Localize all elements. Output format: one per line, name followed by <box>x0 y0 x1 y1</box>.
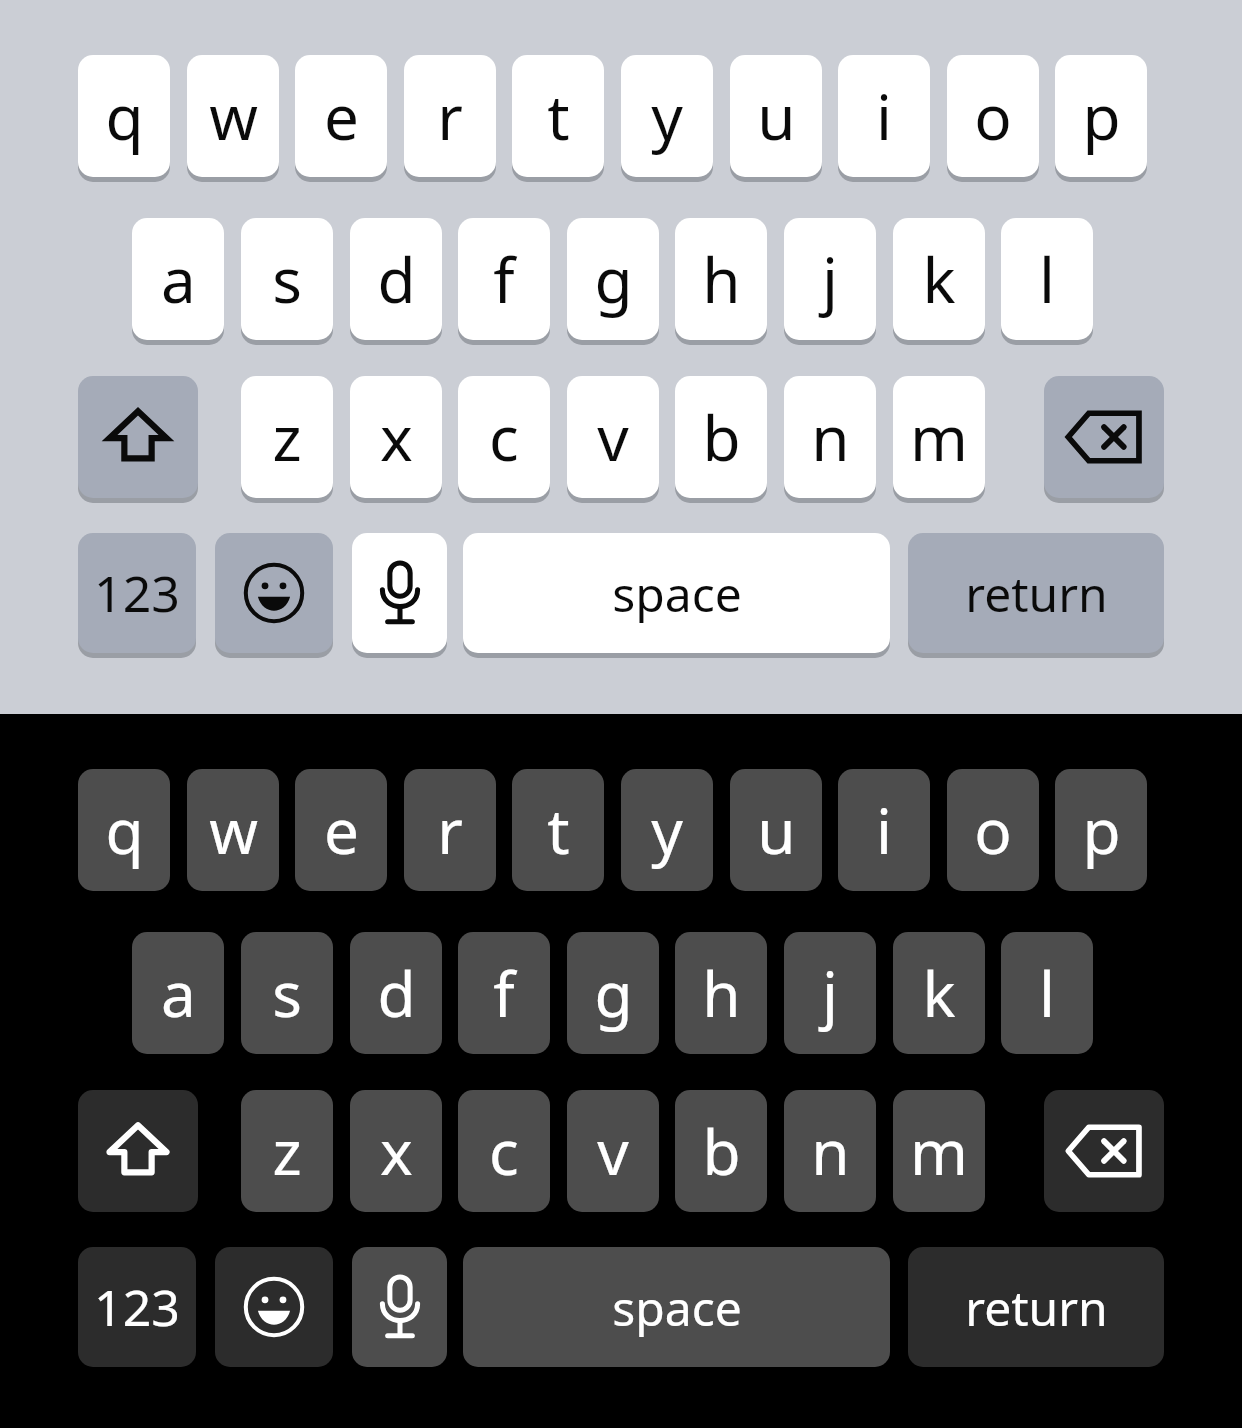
button[interactable]: t <box>512 55 604 177</box>
button[interactable]: c <box>458 1090 550 1212</box>
staticText: w <box>209 788 258 872</box>
button[interactable]: Dictate <box>352 533 447 653</box>
button[interactable]: s <box>241 932 333 1054</box>
button[interactable]: k <box>893 218 985 340</box>
button[interactable]: Backspace <box>1044 1090 1164 1212</box>
staticText: l <box>1039 951 1055 1035</box>
staticText: c <box>489 395 519 479</box>
staticText: m <box>910 1109 968 1193</box>
button[interactable]: f <box>458 932 550 1054</box>
staticText: d <box>377 951 416 1035</box>
button[interactable]: b <box>675 1090 767 1212</box>
button[interactable]: p <box>1055 769 1147 891</box>
staticText: b <box>702 1109 741 1193</box>
staticText: e <box>324 74 359 158</box>
staticText: p <box>1082 788 1121 872</box>
staticText: z <box>272 395 302 479</box>
button[interactable]: n <box>784 1090 876 1212</box>
button[interactable]: h <box>675 218 767 340</box>
staticText: b <box>702 395 741 479</box>
button[interactable]: u <box>730 769 822 891</box>
button[interactable]: l <box>1001 932 1093 1054</box>
button[interactable]: u <box>730 55 822 177</box>
button[interactable]: x <box>350 1090 442 1212</box>
staticText: r <box>437 788 463 872</box>
staticText: p <box>1082 74 1121 158</box>
button[interactable]: w <box>187 55 279 177</box>
button[interactable]: d <box>350 218 442 340</box>
button[interactable]: j <box>784 218 876 340</box>
button[interactable]: s <box>241 218 333 340</box>
button[interactable]: z <box>241 1090 333 1212</box>
button[interactable]: o <box>947 55 1039 177</box>
button[interactable]: Backspace <box>1044 376 1164 498</box>
staticText: n <box>811 1109 850 1193</box>
button[interactable]: Dictate <box>352 1247 447 1367</box>
staticText: 123 <box>94 559 180 627</box>
button[interactable]: g <box>567 218 659 340</box>
staticText: u <box>757 74 796 158</box>
staticText: u <box>757 788 796 872</box>
button[interactable]: c <box>458 376 550 498</box>
button[interactable]: return <box>908 1247 1164 1367</box>
staticText: l <box>1039 237 1055 321</box>
button[interactable]: y <box>621 769 713 891</box>
button[interactable]: 123 <box>78 533 196 653</box>
staticText: h <box>702 237 741 321</box>
button[interactable]: n <box>784 376 876 498</box>
button[interactable]: g <box>567 932 659 1054</box>
button[interactable]: f <box>458 218 550 340</box>
button[interactable]: m <box>893 1090 985 1212</box>
button[interactable]: d <box>350 932 442 1054</box>
staticText: a <box>161 951 196 1035</box>
button[interactable]: o <box>947 769 1039 891</box>
button[interactable]: q <box>78 55 170 177</box>
button[interactable]: space <box>463 533 890 653</box>
staticText: m <box>910 395 968 479</box>
button[interactable]: Shift <box>78 376 198 498</box>
button[interactable]: l <box>1001 218 1093 340</box>
button[interactable]: r <box>404 55 496 177</box>
button[interactable]: h <box>675 932 767 1054</box>
staticText: r <box>437 74 463 158</box>
button[interactable]: x <box>350 376 442 498</box>
staticText: t <box>547 788 570 872</box>
button[interactable]: t <box>512 769 604 891</box>
button[interactable]: p <box>1055 55 1147 177</box>
button[interactable]: r <box>404 769 496 891</box>
staticText: a <box>161 237 196 321</box>
staticText: t <box>547 74 570 158</box>
staticText: space <box>612 1275 742 1340</box>
button[interactable]: Emoji <box>215 1247 333 1367</box>
button[interactable]: v <box>567 1090 659 1212</box>
button[interactable]: j <box>784 932 876 1054</box>
staticText: v <box>597 395 629 479</box>
button[interactable]: e <box>295 55 387 177</box>
button[interactable]: b <box>675 376 767 498</box>
staticText: o <box>974 788 1012 872</box>
staticText: y <box>651 74 683 158</box>
staticText: i <box>876 74 892 158</box>
button[interactable]: a <box>132 932 224 1054</box>
button[interactable]: q <box>78 769 170 891</box>
staticText: space <box>612 561 742 626</box>
button[interactable]: z <box>241 376 333 498</box>
button[interactable]: v <box>567 376 659 498</box>
button[interactable]: i <box>838 55 930 177</box>
button[interactable]: return <box>908 533 1164 653</box>
button[interactable]: i <box>838 769 930 891</box>
button[interactable]: y <box>621 55 713 177</box>
staticText: g <box>594 237 633 321</box>
button[interactable]: space <box>463 1247 890 1367</box>
button[interactable]: Emoji <box>215 533 333 653</box>
button[interactable]: Shift <box>78 1090 198 1212</box>
button[interactable]: 123 <box>78 1247 196 1367</box>
button[interactable]: e <box>295 769 387 891</box>
button[interactable]: a <box>132 218 224 340</box>
staticText: z <box>272 1109 302 1193</box>
button[interactable]: m <box>893 376 985 498</box>
staticText: s <box>272 951 302 1035</box>
button[interactable]: w <box>187 769 279 891</box>
staticText: v <box>597 1109 629 1193</box>
button[interactable]: k <box>893 932 985 1054</box>
